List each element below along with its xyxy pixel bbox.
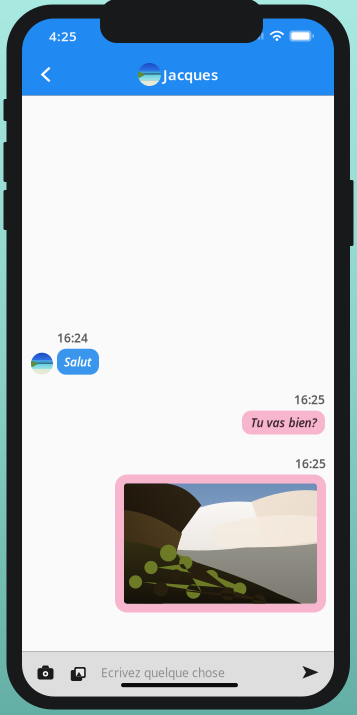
staticText: 16:24	[57, 330, 88, 346]
button[interactable]: Camera	[30, 657, 61, 687]
button[interactable]: Send	[295, 657, 326, 687]
staticText: Jacques	[163, 65, 218, 84]
staticText: Salut	[64, 354, 92, 370]
staticText: Tu vas bien?	[250, 415, 316, 430]
button[interactable]: Jacques	[138, 63, 218, 86]
staticText: 16:25	[295, 456, 326, 471]
button[interactable]: Photo library	[61, 657, 92, 687]
staticText: Ecrivez quelque chose	[101, 664, 225, 680]
button[interactable]: Back	[31, 59, 61, 89]
button[interactable]: Ecrivez quelque chose	[92, 657, 277, 687]
staticText: 16:25	[294, 392, 325, 408]
staticText: 4:25	[49, 27, 77, 45]
